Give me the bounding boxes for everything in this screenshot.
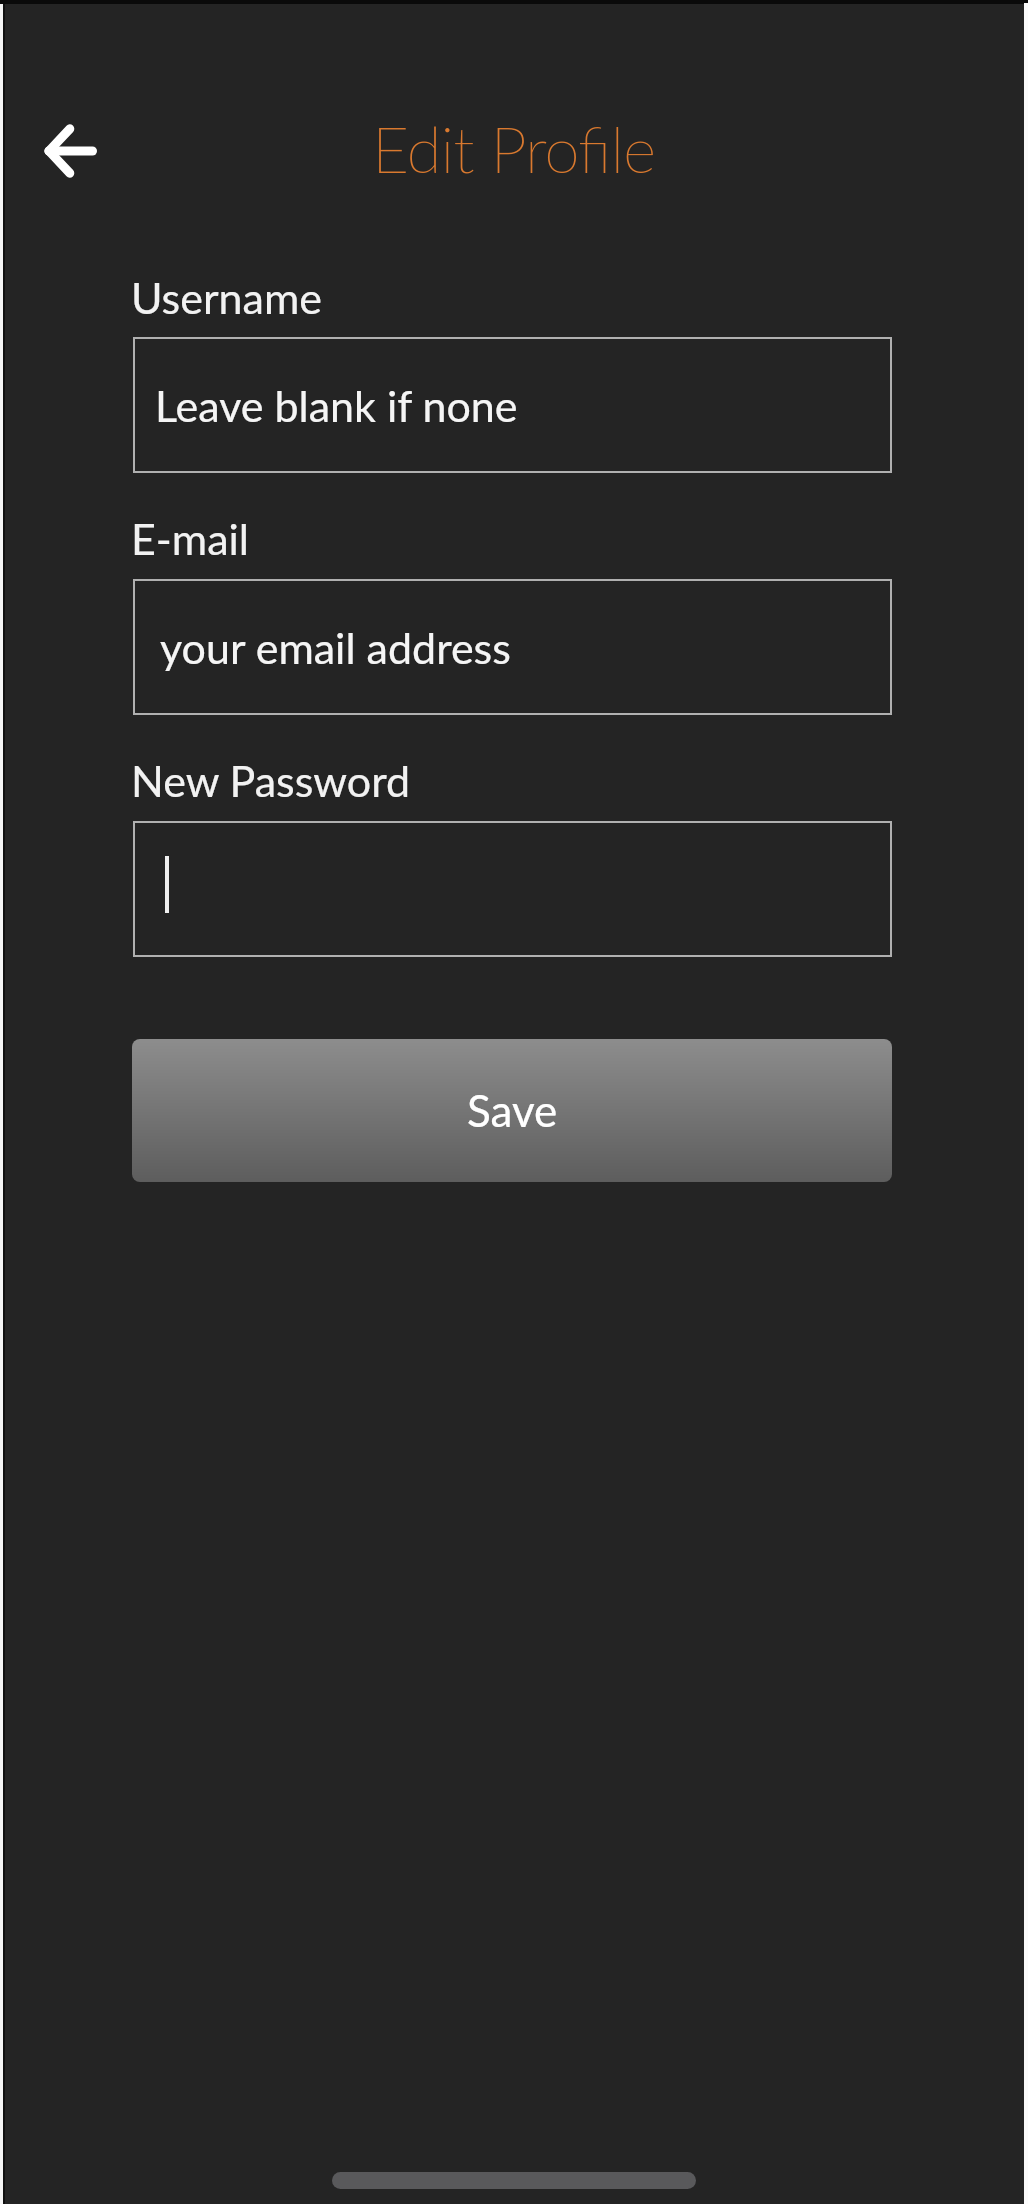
staticText: Username (131, 272, 323, 324)
staticText: Leave blank if none (155, 380, 518, 432)
staticText: New Password (131, 755, 411, 807)
button[interactable] (40, 120, 102, 182)
button[interactable] (133, 821, 892, 957)
staticText: Edit Profile (372, 110, 656, 187)
staticText: E-mail (131, 513, 250, 565)
staticText: your email address (160, 622, 511, 674)
button[interactable]: Save (132, 1039, 892, 1182)
button[interactable]: Leave blank if none (133, 337, 892, 473)
staticText: Save (467, 1084, 558, 1137)
button[interactable]: your email address (133, 579, 892, 715)
